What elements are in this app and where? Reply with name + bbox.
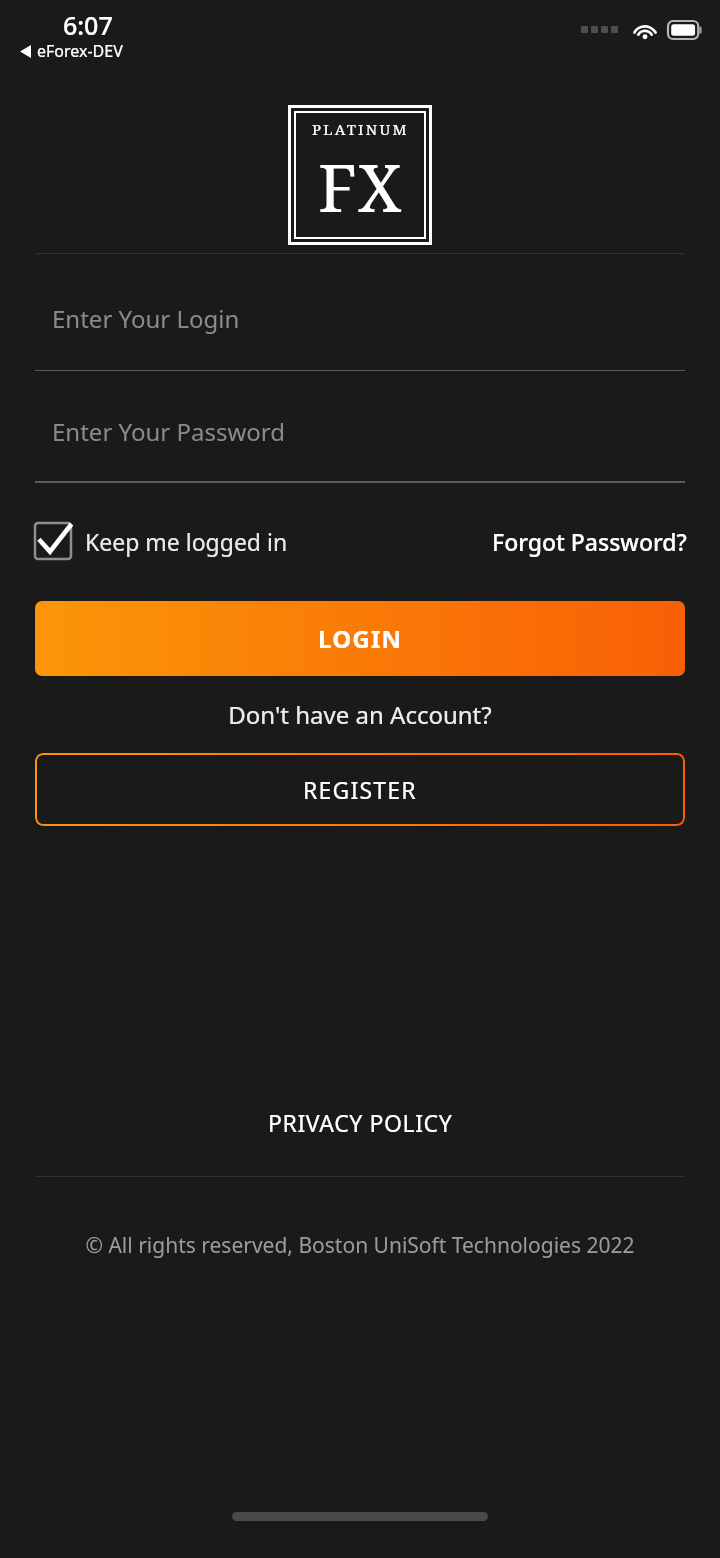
button[interactable]: Enter Your Login: [35, 254, 685, 371]
button[interactable]: Enter Your Password: [35, 371, 685, 483]
button[interactable]: Keep me logged in: [33, 521, 288, 561]
staticText: Enter Your Password: [52, 415, 285, 448]
staticText: © All rights reserved, Boston UniSoft Te…: [0, 1231, 720, 1260]
button[interactable]: PRIVACY POLICY: [0, 1107, 720, 1138]
button[interactable]: Forgot Password?: [492, 526, 687, 557]
staticText: eForex-DEV: [37, 40, 123, 62]
staticText: Enter Your Login: [52, 302, 240, 335]
staticText: Keep me logged in: [85, 526, 288, 557]
staticText: FX: [318, 141, 403, 231]
staticText: REGISTER: [303, 774, 417, 805]
staticText: LOGIN: [318, 622, 403, 655]
button[interactable]: REGISTER: [35, 753, 685, 826]
button[interactable]: LOGIN: [35, 601, 685, 676]
staticText: Forgot Password?: [492, 526, 687, 557]
staticText: Don't have an Account?: [0, 698, 720, 731]
staticText: 6:07: [63, 8, 113, 42]
staticText: PLATINUM: [312, 119, 409, 139]
staticText: PRIVACY POLICY: [268, 1107, 453, 1138]
